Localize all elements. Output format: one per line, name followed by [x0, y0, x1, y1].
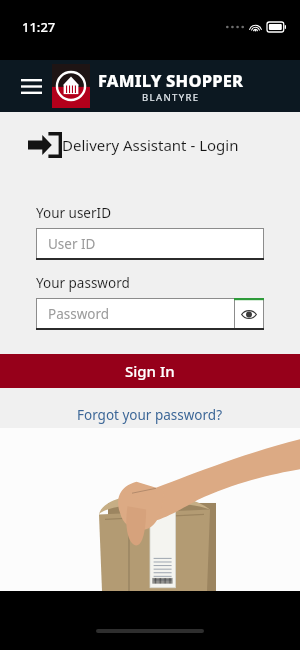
button[interactable]: User ID	[36, 228, 264, 260]
staticText: Your userID	[36, 204, 111, 222]
staticText: User ID	[48, 235, 96, 253]
button[interactable]: Sign In	[0, 354, 300, 388]
button[interactable]: Forgot your password?	[67, 402, 233, 428]
button[interactable]: Show password	[234, 298, 264, 330]
staticText: Sign In	[125, 361, 175, 381]
staticText: BLANTYRE	[142, 91, 200, 104]
staticText: Your password	[36, 274, 130, 292]
button[interactable]: Open navigation menu	[14, 69, 48, 103]
staticText: 11:27	[22, 18, 56, 36]
button[interactable]: Password	[36, 298, 234, 330]
staticText: Delivery Assistant - Login	[62, 135, 239, 155]
staticText: Password	[48, 305, 110, 323]
staticText: FAMILY SHOPPER	[98, 69, 244, 91]
